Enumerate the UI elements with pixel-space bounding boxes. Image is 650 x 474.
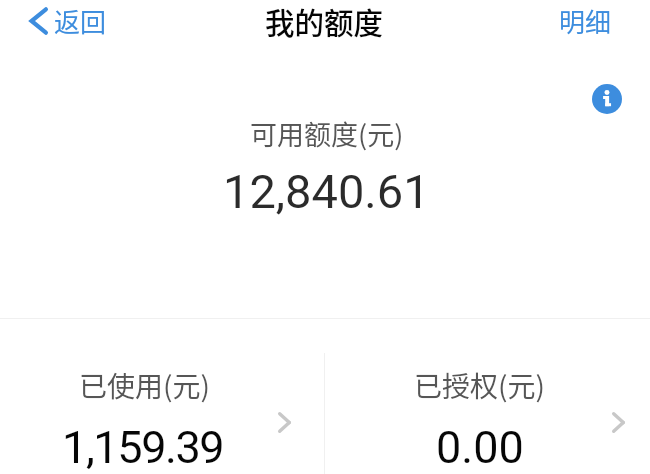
staticText: 已授权(元) [414,365,545,406]
button[interactable]: 返回 [19,0,117,44]
staticText: 可用额度(元) [250,114,404,153]
staticText: 已使用(元) [79,365,210,406]
staticText: 1,159.39 [62,421,224,474]
staticText: 返回 [54,2,107,40]
button[interactable]: 已使用(元) [0,319,324,474]
staticText: 0.00 [436,421,524,474]
staticText: 明细 [559,2,612,40]
button[interactable]: 明细 [543,0,628,44]
button[interactable]: Info [592,84,622,114]
staticText: 12,840.61 [223,164,430,219]
staticText: 我的额度 [265,0,384,43]
button[interactable]: 已授权(元) [325,319,456,474]
